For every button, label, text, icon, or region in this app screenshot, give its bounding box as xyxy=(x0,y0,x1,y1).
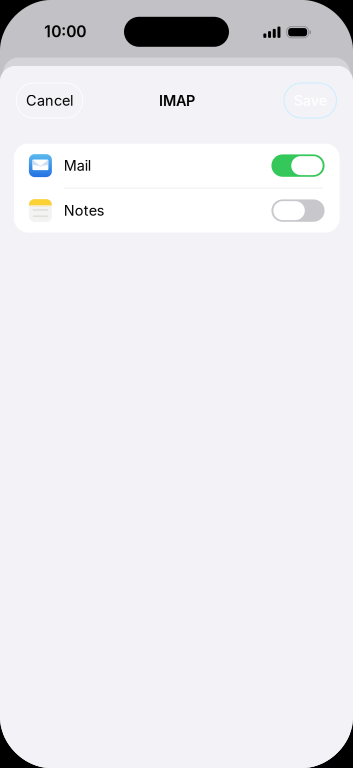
staticText: Cancel xyxy=(26,92,73,109)
button[interactable]: Notes xyxy=(14,189,340,233)
button[interactable]: Cancel xyxy=(16,83,83,118)
button[interactable]: Save xyxy=(284,83,336,118)
button[interactable]: Mail xyxy=(14,144,340,188)
staticText: 10:00 xyxy=(44,22,86,41)
staticText: IMAP xyxy=(159,92,195,109)
staticText: Mail xyxy=(64,157,91,174)
staticText: Notes xyxy=(64,202,105,219)
staticText: Save xyxy=(294,92,327,109)
